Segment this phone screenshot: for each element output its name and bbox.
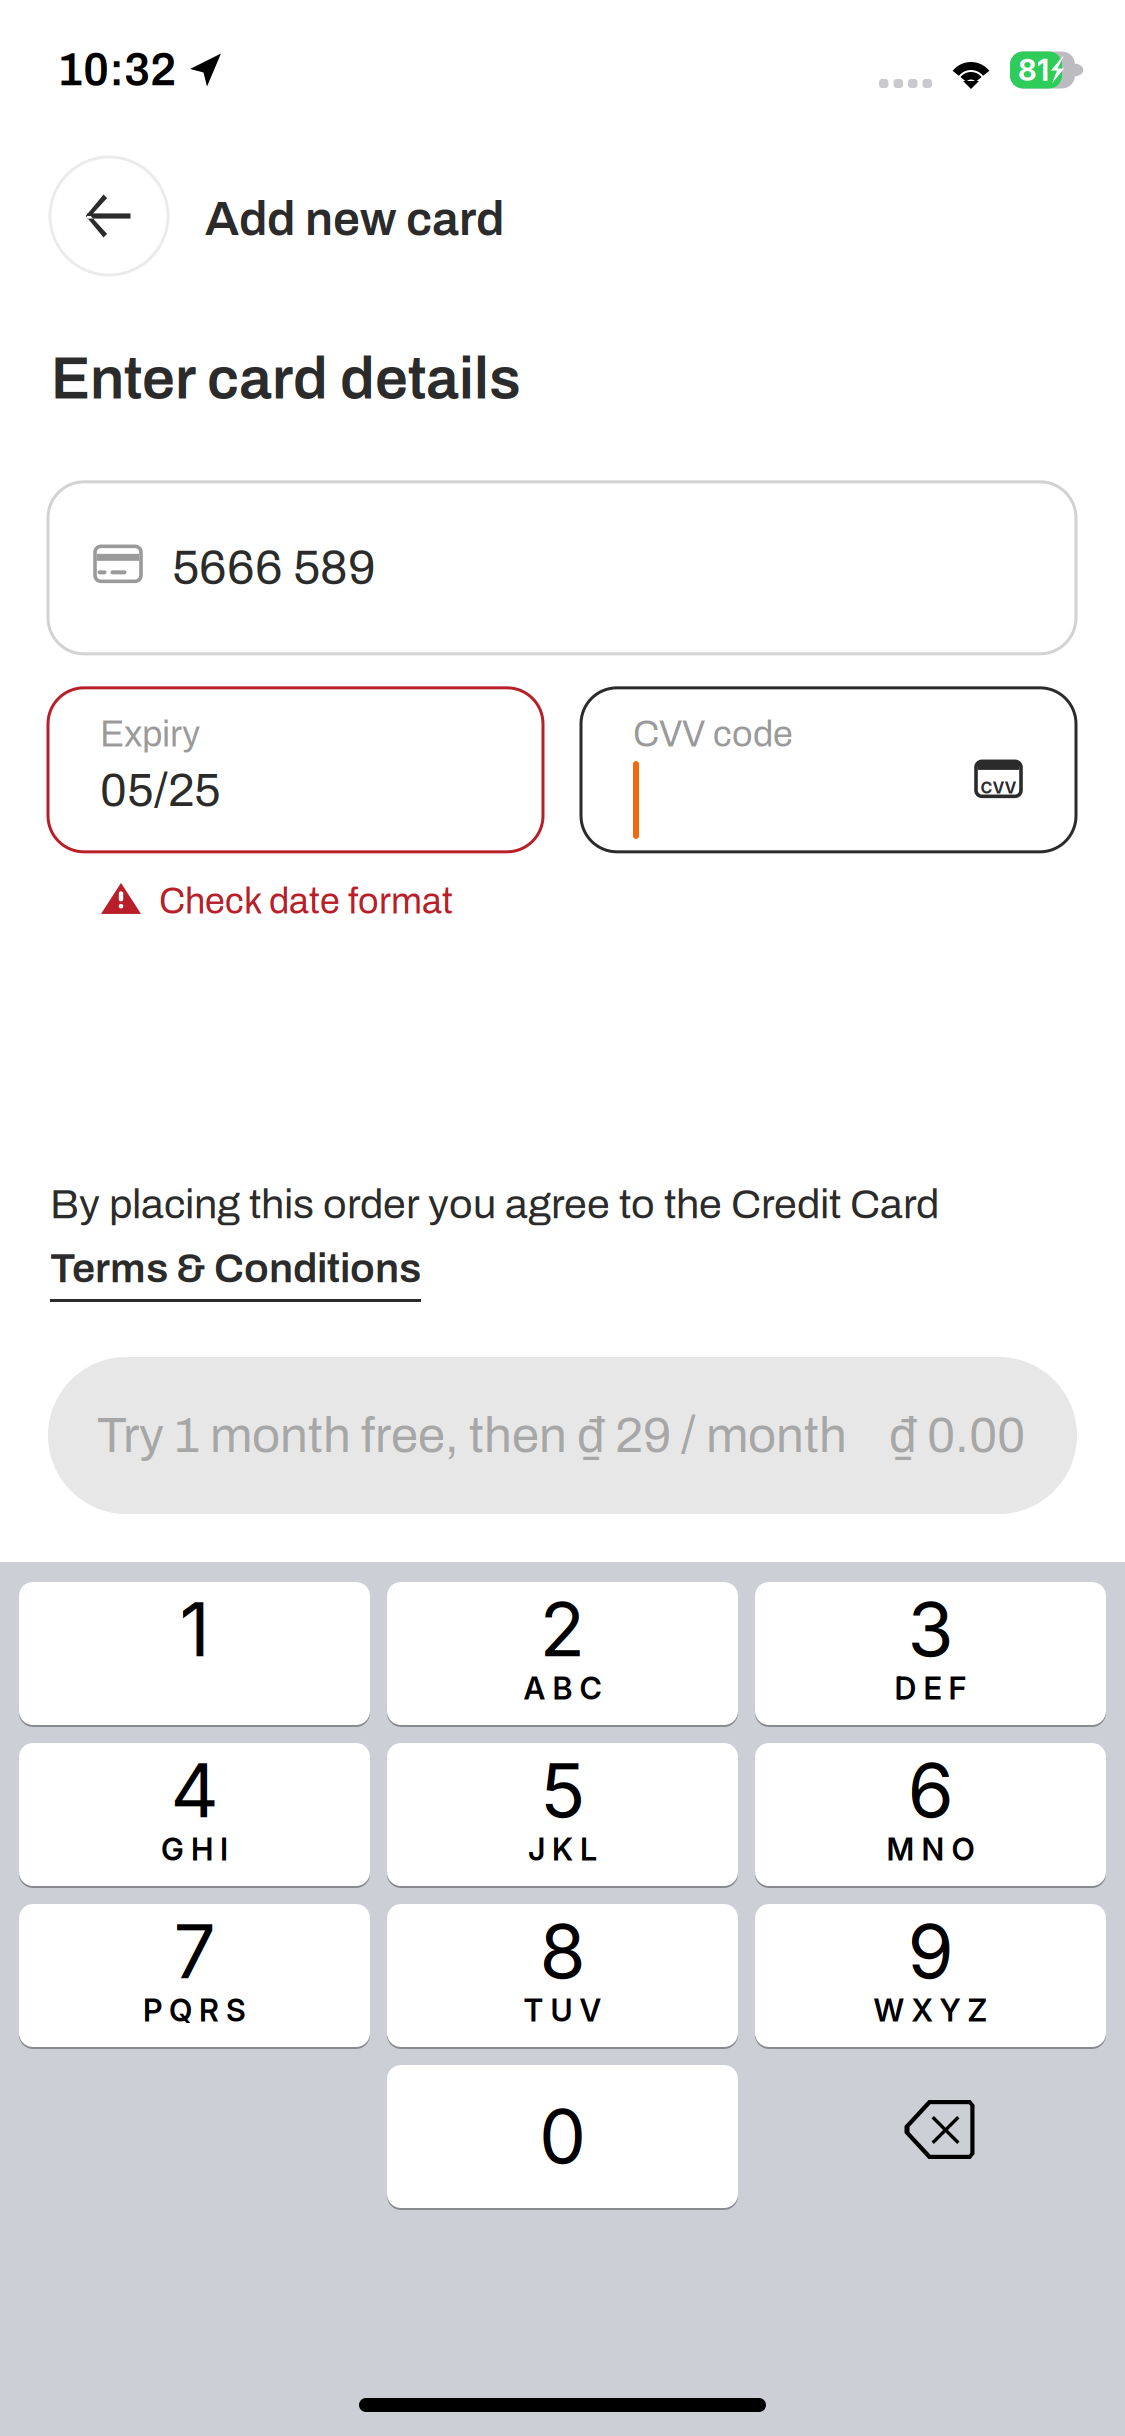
button[interactable]: 6 [755, 1742, 1106, 1887]
staticText: 05/25 [100, 765, 221, 816]
staticText: A B C [523, 1670, 601, 1707]
staticText: G H I [161, 1831, 228, 1868]
staticText: 10:32 [57, 45, 176, 95]
staticText: W X Y Z [873, 1992, 987, 2029]
staticText: 8 [539, 1906, 585, 1996]
staticText: J K L [528, 1831, 597, 1868]
staticText: Try 1 month free, then ₫ 29 / month [97, 1409, 847, 1462]
staticText: CVV code [633, 715, 793, 754]
staticText: 3 [907, 1584, 953, 1674]
button[interactable]: 9 [755, 1903, 1106, 2048]
staticText: 5 [540, 1745, 585, 1835]
button[interactable]: 2 [387, 1581, 738, 1726]
staticText: By placing this order you agree to the C… [50, 1182, 939, 1227]
staticText: Add new card [205, 193, 504, 245]
staticText: D E F [894, 1670, 966, 1707]
button[interactable]: 7 [19, 1903, 370, 2048]
staticText: Expiry [100, 715, 200, 754]
staticText: Check date format [159, 882, 453, 921]
staticText: 6 [907, 1745, 953, 1835]
staticText: 81 [1018, 52, 1049, 88]
staticText: P Q R S [143, 1992, 246, 2029]
staticText: 0 [539, 2091, 586, 2181]
staticText: ₫ 0.00 [889, 1409, 1025, 1462]
button[interactable]: 5 [387, 1742, 738, 1887]
button[interactable]: 3 [755, 1581, 1106, 1726]
staticText: Enter card details [51, 347, 521, 411]
button[interactable]: 1 [19, 1581, 370, 1726]
button[interactable]: 0 [387, 2064, 738, 2209]
button[interactable]: Terms & Conditions [50, 1246, 421, 1302]
staticText: 1 [179, 1584, 209, 1674]
button[interactable]: 4 [19, 1742, 370, 1887]
staticText: CVV [980, 778, 1016, 797]
staticText: 7 [173, 1906, 215, 1996]
staticText: T U V [523, 1992, 601, 2029]
staticText: 5666 589 [172, 542, 376, 594]
staticText: M N O [886, 1831, 974, 1868]
staticText: 2 [539, 1584, 585, 1674]
staticText: 4 [170, 1745, 218, 1835]
button[interactable]: Try 1 month free, then ₫ 29 / month [48, 1357, 1077, 1514]
button[interactable]: Delete [755, 2064, 1106, 2209]
button[interactable]: Back [50, 157, 168, 275]
staticText: 9 [907, 1906, 953, 1996]
staticText: Terms & Conditions [50, 1246, 421, 1291]
button[interactable]: 8 [387, 1903, 738, 2048]
